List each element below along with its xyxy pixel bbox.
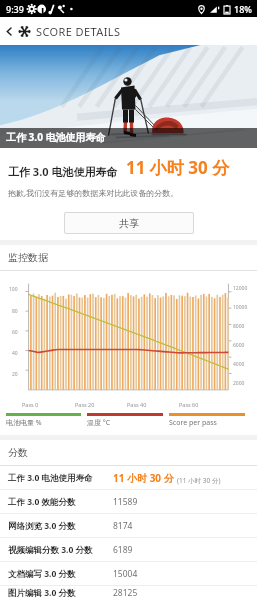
staticText: 8174	[113, 520, 133, 532]
staticText: 工作 3.0 电池使用寿命	[8, 472, 113, 484]
staticText: SCORE DETAILS	[36, 24, 121, 39]
staticText: 网络浏览 3.0 分数	[8, 520, 113, 532]
button[interactable]: 网络浏览 3.0 分数	[0, 514, 257, 538]
staticText: Pass 20	[75, 401, 95, 408]
button[interactable]: 图片编辑 3.0 分数	[0, 586, 257, 600]
staticText: Score per pass	[169, 418, 217, 428]
staticText: 20	[12, 371, 18, 378]
staticText: 28125	[113, 587, 138, 599]
staticText: Pass 60	[179, 401, 199, 408]
staticText: 11589	[113, 496, 138, 508]
staticText: Pass 40	[127, 401, 147, 408]
staticText: 11 小时 30 分	[113, 471, 174, 485]
staticText: 80	[12, 308, 18, 315]
staticText: 18%	[234, 3, 252, 15]
staticText: 工作 3.0 电池使用寿命	[6, 130, 106, 144]
staticText: 6000	[233, 342, 245, 349]
staticText: 工作 3.0 效能分数	[8, 496, 113, 508]
staticText: 100	[9, 286, 18, 293]
staticText: 60	[12, 329, 18, 336]
staticText: 电池电量 %	[6, 418, 42, 428]
staticText: 视频编辑分数 3.0 分数	[8, 544, 113, 556]
button[interactable]: 共享	[64, 212, 194, 234]
staticText: 4000	[233, 361, 245, 368]
staticText: 15004	[113, 568, 138, 580]
button[interactable]: 文档编写 3.0 分数	[0, 562, 257, 586]
button[interactable]: 工作 3.0 电池使用寿命	[0, 466, 257, 490]
staticText: 监控数据	[8, 251, 48, 264]
staticText: 分数	[8, 446, 28, 459]
button[interactable]: Back	[0, 17, 18, 45]
staticText: 6189	[113, 544, 133, 556]
staticText: 图片编辑 3.0 分数	[8, 587, 113, 599]
staticText: 温度 °C	[87, 418, 111, 428]
staticText: Pass 0	[22, 401, 39, 408]
staticText: 抱歉,我们没有足够的数据来对比此设备的分数。	[8, 187, 179, 198]
button[interactable]: 视频编辑分数 3.0 分数	[0, 538, 257, 562]
staticText: 2000	[233, 380, 245, 387]
staticText: 11 小时 30 分	[126, 156, 230, 179]
staticText: 工作 3.0 电池使用寿命	[8, 164, 118, 179]
staticText: 12000	[233, 285, 248, 292]
staticText: 共享	[119, 217, 139, 230]
staticText: (11 小时 30 分)	[177, 476, 221, 485]
button[interactable]: 工作 3.0 效能分数	[0, 490, 257, 514]
staticText: 9:39	[6, 3, 24, 15]
staticText: 文档编写 3.0 分数	[8, 568, 113, 580]
staticText: 8000	[233, 323, 245, 330]
staticText: 10000	[233, 304, 248, 311]
staticText: 40	[12, 350, 18, 357]
